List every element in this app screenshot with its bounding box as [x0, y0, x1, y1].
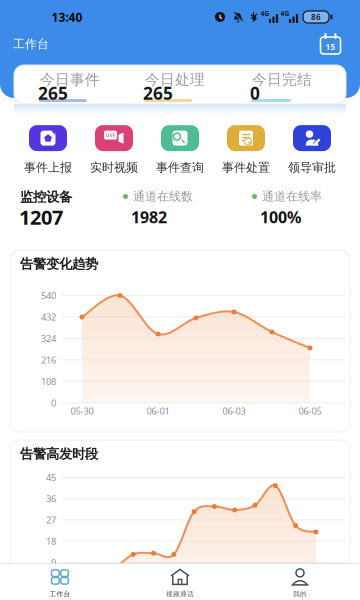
staticText: 265	[38, 81, 68, 104]
staticText: 我的	[293, 590, 307, 598]
staticText: 05-30	[70, 405, 93, 417]
staticText: 108	[41, 375, 56, 388]
staticText: 告警变化趋势	[20, 256, 98, 272]
button[interactable]: 领导审批	[279, 125, 345, 175]
staticText: 视频通话	[166, 590, 194, 598]
staticText: 0	[51, 577, 56, 590]
button[interactable]: 我的	[240, 568, 360, 598]
staticText: 86	[311, 12, 321, 22]
staticText: 今日完结	[252, 70, 312, 88]
staticText: 工作台	[13, 37, 49, 51]
button[interactable]: 工作台	[0, 568, 120, 598]
staticText: 432	[41, 311, 56, 323]
staticText: 通道在线率	[262, 189, 322, 204]
staticText: 事件处置	[222, 160, 270, 175]
staticText: 1982	[131, 206, 167, 228]
staticText: 领导审批	[288, 160, 336, 175]
staticText: 36	[46, 492, 56, 505]
staticText: 265	[143, 81, 173, 104]
staticText: 100%	[260, 206, 301, 228]
staticText: 324	[41, 332, 56, 345]
staticText: 监控设备	[20, 189, 72, 205]
staticText: 06-01	[146, 405, 169, 417]
staticText: 18	[46, 535, 56, 547]
staticText: 27	[46, 514, 56, 526]
button[interactable]: 事件上报	[15, 125, 81, 175]
staticText: 216	[41, 354, 56, 366]
staticText: LIVE	[106, 132, 115, 138]
staticText: 0	[51, 397, 56, 409]
button[interactable]: 事件处置	[213, 125, 279, 175]
staticText: 4G	[280, 9, 289, 18]
staticText: 工作台	[49, 590, 70, 598]
staticText: 1207	[19, 204, 63, 230]
staticText: 实时视频	[90, 160, 138, 175]
staticText: 今日事件	[40, 70, 100, 88]
button[interactable]: LIVE	[81, 125, 147, 175]
staticText: 9	[51, 556, 56, 568]
staticText: 今日处理	[145, 70, 205, 88]
button[interactable]: 事件查询	[147, 125, 213, 175]
button[interactable]: 视频通话	[120, 568, 240, 598]
staticText: 事件上报	[24, 160, 72, 175]
staticText: 告警高发时段	[20, 446, 98, 462]
staticText: 15	[325, 42, 335, 52]
staticText: 06-05	[298, 405, 321, 417]
staticText: 13:40	[51, 9, 82, 25]
staticText: 事件查询	[156, 160, 204, 175]
staticText: 通道在线数	[133, 189, 193, 204]
staticText: 06-03	[222, 405, 245, 417]
staticText: 45	[46, 471, 56, 484]
button[interactable]: 日历	[320, 33, 341, 55]
staticText: 540	[41, 289, 56, 302]
staticText: 4G	[260, 9, 269, 18]
staticText: 0	[250, 81, 260, 104]
